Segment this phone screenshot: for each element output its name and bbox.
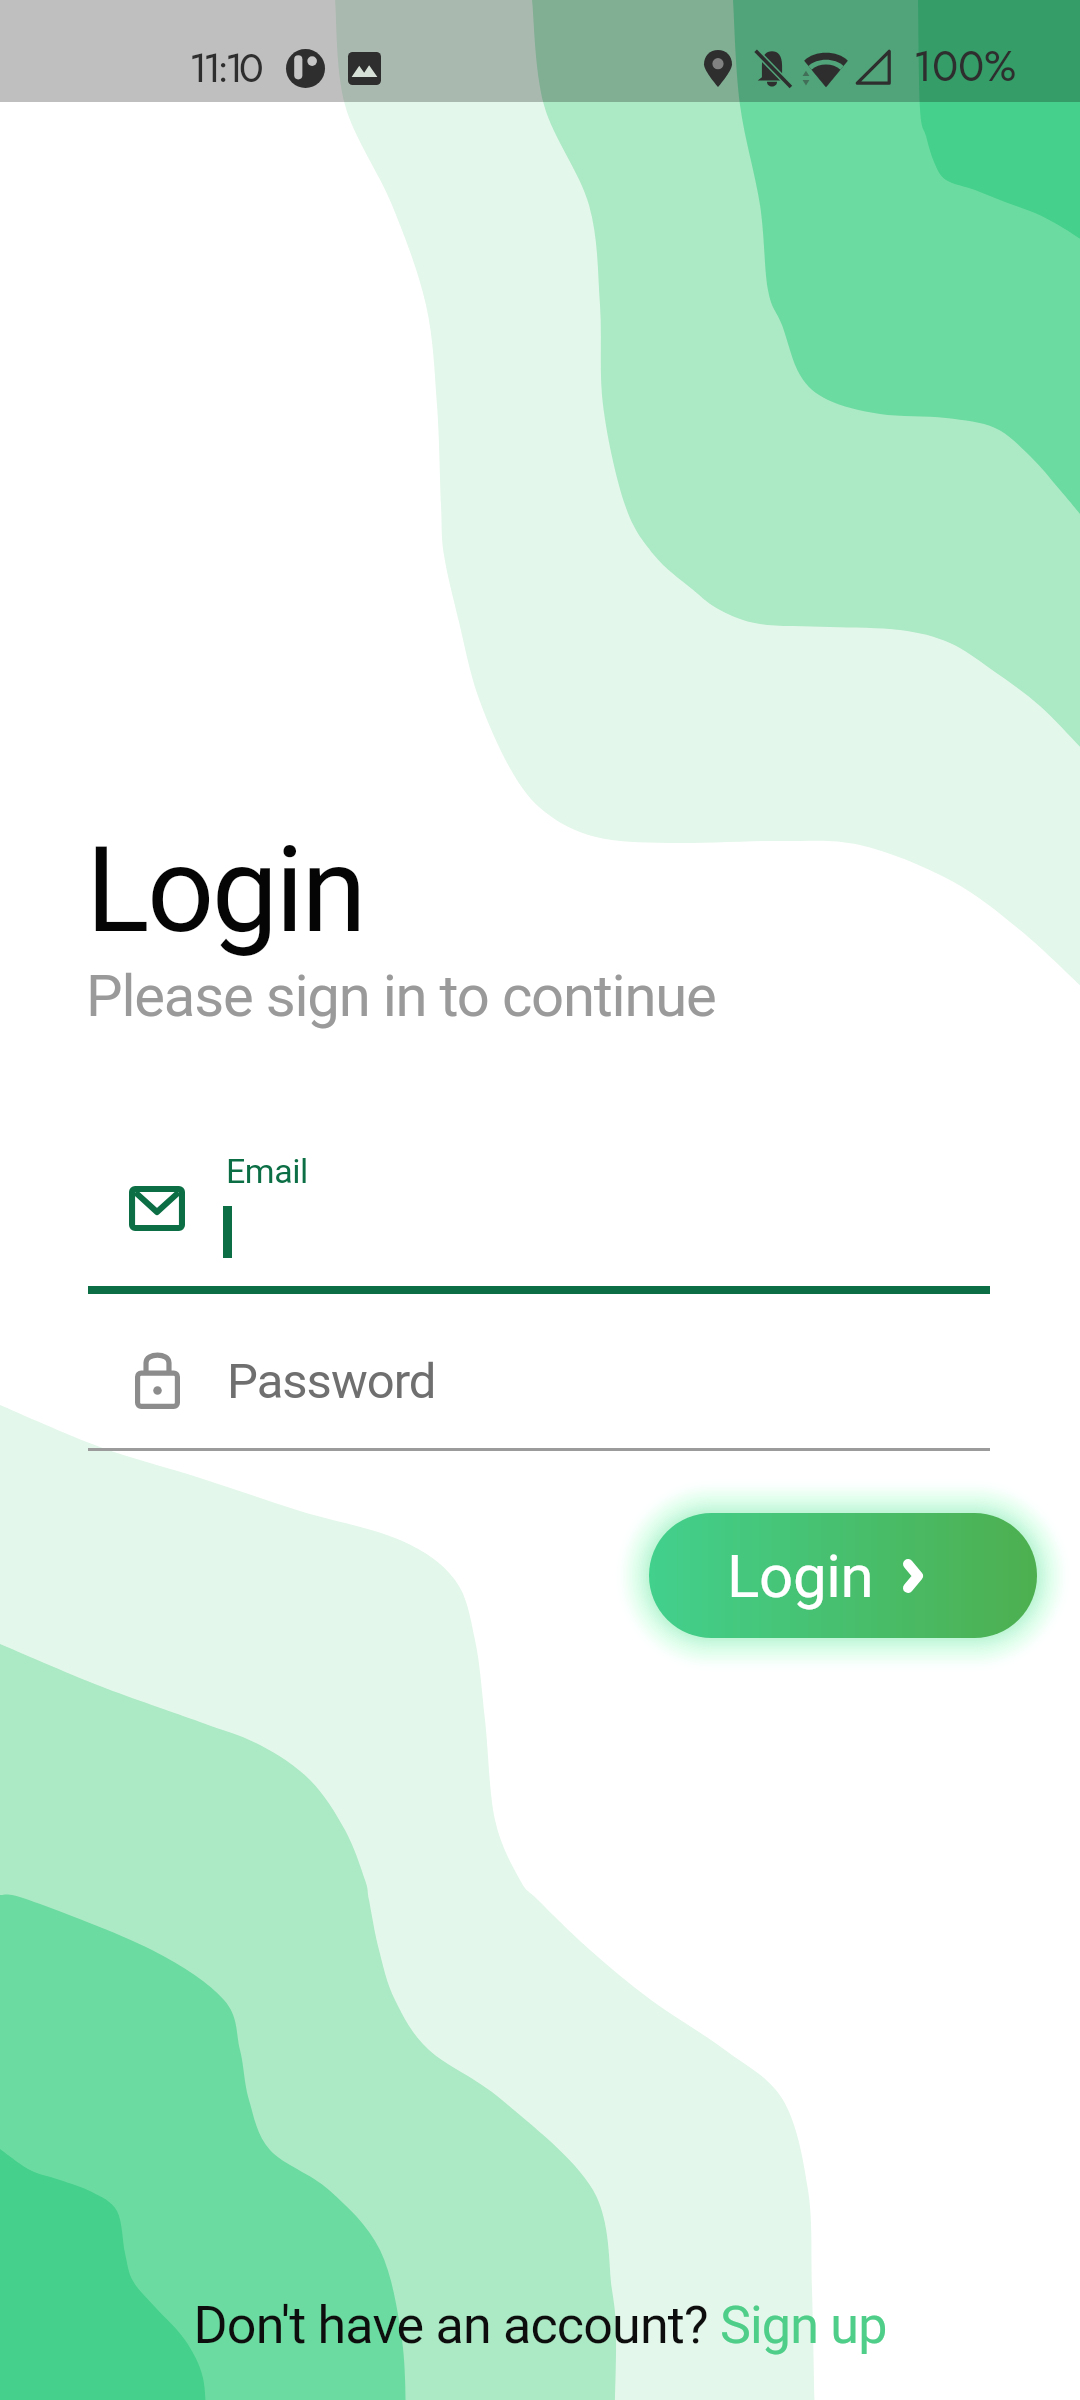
staticText: Login	[86, 822, 364, 960]
staticText: 100%	[913, 35, 1017, 97]
button[interactable]: Login	[649, 1513, 1037, 1638]
button[interactable]: Don't have an account? Sign up	[193, 2295, 887, 2356]
staticText: Please sign in to continue	[86, 962, 716, 1030]
staticText: 11:10	[189, 38, 260, 97]
button[interactable]: Password	[0, 1340, 1080, 1470]
staticText: Password	[227, 1353, 436, 1410]
button[interactable]: Email	[0, 1130, 1080, 1306]
staticText: Login	[727, 1541, 874, 1611]
staticText: Email	[226, 1151, 308, 1191]
